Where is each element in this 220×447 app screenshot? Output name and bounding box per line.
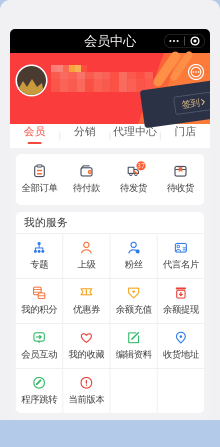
button[interactable]: Profile photo — [15, 64, 47, 96]
staticText: 粉丝 — [125, 259, 143, 270]
staticText: 收货地址 — [163, 349, 199, 360]
button[interactable]: 门店 — [161, 124, 210, 148]
staticText: 当前版本 — [68, 394, 104, 405]
button[interactable]: 分销 — [60, 124, 109, 148]
button[interactable]: Messages — [188, 64, 204, 80]
button[interactable]: 程序跳转 — [16, 369, 62, 413]
button[interactable]: 全部订单 — [16, 154, 63, 205]
button[interactable]: 我的积分 — [16, 279, 62, 323]
button[interactable]: More — [164, 34, 184, 47]
staticText: 代言名片 — [163, 259, 199, 270]
staticText: 余额充值 — [116, 304, 152, 315]
staticText: 签到 — [182, 99, 200, 111]
staticText: 余额提现 — [163, 304, 199, 315]
staticText: 专题 — [30, 259, 48, 270]
staticText: 待收货 — [167, 182, 194, 194]
staticText: 我的服务 — [24, 216, 68, 229]
button[interactable]: 会员 — [10, 124, 59, 148]
button[interactable]: 余额提现 — [158, 279, 204, 323]
button[interactable]: 上级 — [63, 234, 109, 278]
staticText: 待付款 — [73, 182, 100, 194]
staticText: 会员中心 — [84, 33, 136, 49]
staticText: 待发货 — [120, 182, 147, 194]
button[interactable]: 专题 — [16, 234, 62, 278]
button[interactable]: 待付款 — [63, 154, 110, 205]
staticText: 程序跳转 — [21, 394, 57, 405]
button[interactable]: 收货地址 — [158, 324, 204, 368]
staticText: 上级 — [77, 259, 95, 270]
staticText: 优惠券 — [73, 304, 100, 315]
staticText: 代理中心 — [113, 125, 157, 138]
button[interactable]: 代言名片 — [158, 234, 204, 278]
staticText: 门店 — [174, 125, 196, 138]
button[interactable]: 我的收藏 — [63, 324, 109, 368]
button[interactable]: 会员互动 — [16, 324, 62, 368]
button[interactable]: 代理中心 — [110, 124, 160, 148]
staticText: 分销 — [74, 125, 96, 138]
staticText: 37 — [137, 161, 145, 170]
button[interactable]: Close — [185, 34, 205, 47]
button[interactable]: 余额充值 — [110, 279, 157, 323]
staticText: 编辑资料 — [116, 349, 152, 360]
staticText: 全部订单 — [21, 182, 57, 194]
staticText: 会员 — [24, 125, 46, 138]
staticText: 我的收藏 — [68, 349, 104, 360]
staticText: 我的积分 — [21, 304, 57, 315]
staticText: 会员互动 — [21, 349, 57, 360]
button[interactable]: 粉丝 — [110, 234, 157, 278]
button[interactable]: 37 — [110, 154, 157, 205]
button[interactable]: 编辑资料 — [110, 324, 157, 368]
button[interactable]: 优惠券 — [63, 279, 109, 323]
button[interactable]: 待收货 — [157, 154, 204, 205]
button[interactable]: 签到 — [142, 85, 220, 123]
button[interactable]: 当前版本 — [63, 369, 109, 413]
